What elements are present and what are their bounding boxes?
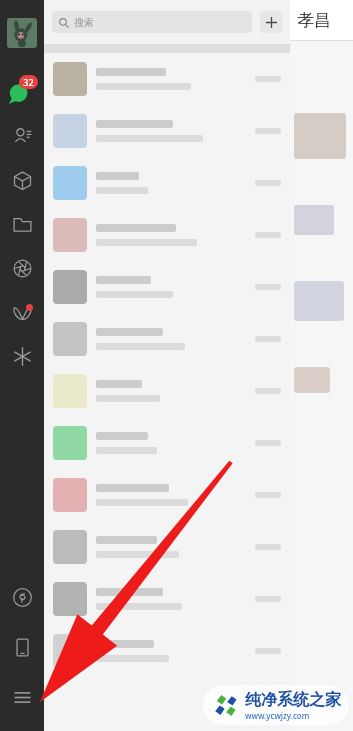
button[interactable]: Chats (5, 74, 39, 108)
button[interactable]: Mini app (6, 581, 38, 613)
button[interactable]: Phone (6, 631, 38, 663)
staticText: 32 (23, 76, 34, 88)
button[interactable] (44, 417, 290, 469)
button[interactable]: Contacts (6, 120, 38, 152)
button[interactable] (44, 53, 290, 105)
button[interactable]: Profile (7, 18, 37, 48)
button[interactable]: Add (260, 11, 282, 33)
staticText: 纯净系统之家 (245, 690, 341, 710)
button[interactable] (44, 469, 290, 521)
staticText: 搜索 (74, 16, 94, 29)
button[interactable] (44, 105, 290, 157)
button[interactable] (44, 573, 290, 625)
button[interactable]: Favorites (6, 340, 38, 372)
button[interactable] (44, 313, 290, 365)
button[interactable]: Moments (6, 252, 38, 284)
button[interactable]: Files (6, 208, 38, 240)
button[interactable] (44, 261, 290, 313)
button[interactable]: More (6, 681, 38, 713)
button[interactable]: Mini programs (6, 164, 38, 196)
button[interactable] (44, 625, 290, 677)
button[interactable] (44, 157, 290, 209)
button[interactable]: Channels (6, 296, 38, 328)
staticText: 孝昌 (297, 10, 331, 31)
button[interactable] (44, 521, 290, 573)
button[interactable]: 搜索 (52, 11, 252, 33)
staticText: www.ycwjzy.com (245, 710, 310, 721)
button[interactable] (44, 209, 290, 261)
button[interactable] (44, 365, 290, 417)
